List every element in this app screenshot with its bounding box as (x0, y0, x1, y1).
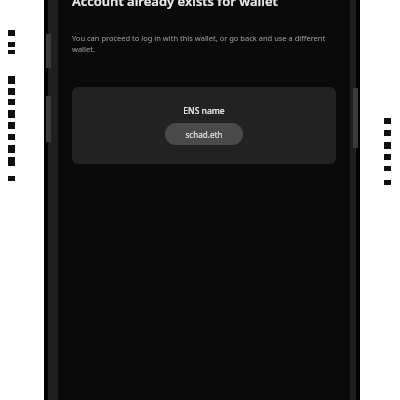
staticText: ENS name (72, 105, 336, 117)
button[interactable]: schad.eth (165, 123, 243, 145)
button[interactable]: ENS name (72, 87, 336, 164)
staticText: You can proceed to log in with this wall… (72, 33, 336, 54)
staticText: schad.eth (165, 129, 243, 140)
staticText: Account already exists for wallet (72, 0, 336, 10)
